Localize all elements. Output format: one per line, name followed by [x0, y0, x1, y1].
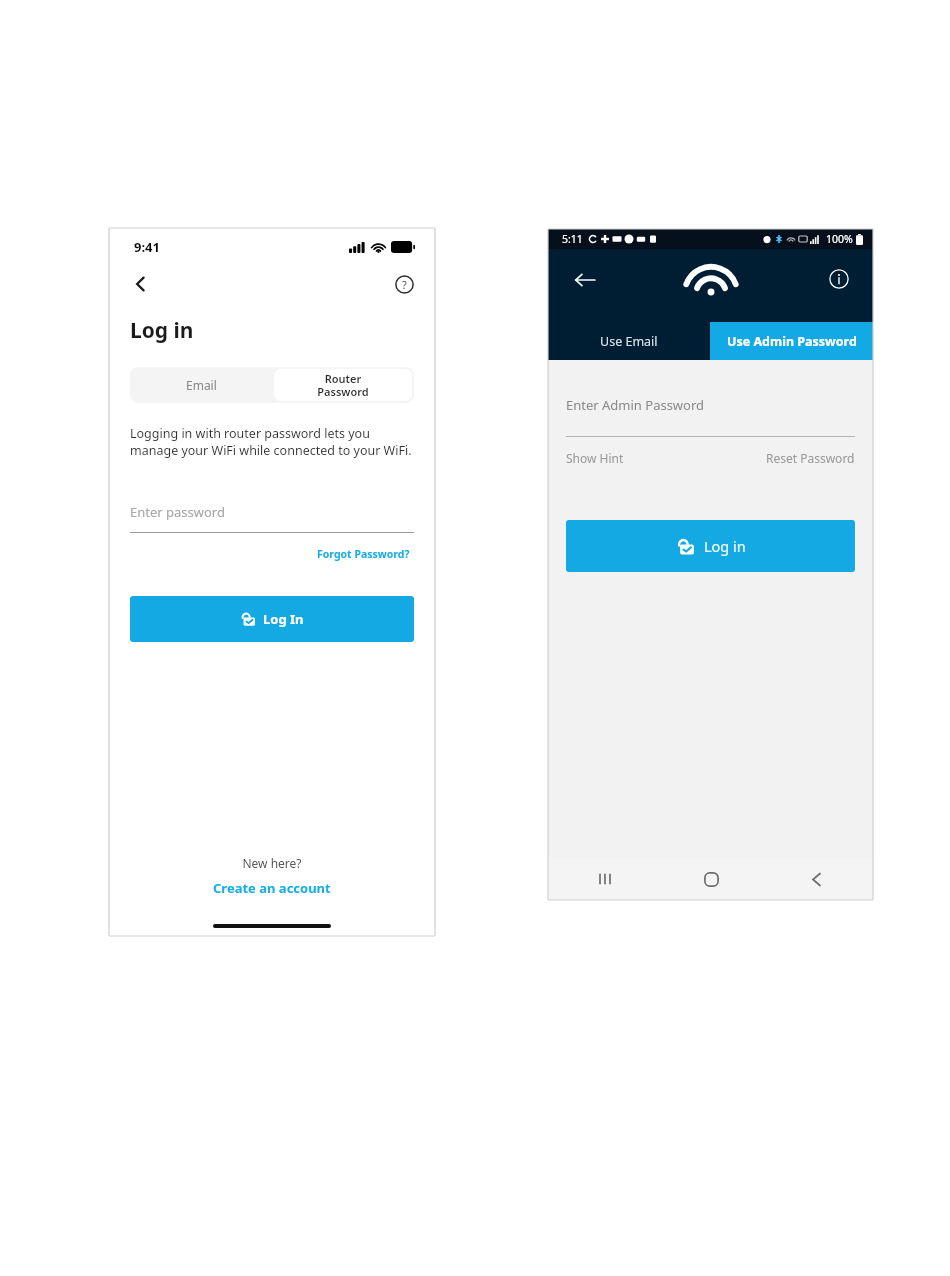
- staticText: Router Password: [317, 371, 369, 399]
- button[interactable]: Help: [387, 267, 421, 301]
- staticText: ?: [402, 277, 407, 292]
- staticText: New here?: [109, 855, 435, 871]
- button[interactable]: Info: [819, 259, 859, 299]
- staticText: Enter Admin Password: [566, 396, 705, 414]
- button[interactable]: Log In: [130, 596, 414, 642]
- button[interactable]: Back: [123, 266, 159, 302]
- staticText: Create an account: [213, 879, 331, 897]
- button[interactable]: Enter Admin Password: [566, 396, 855, 437]
- staticText: Logging in with router password lets you…: [130, 425, 414, 459]
- button[interactable]: Enter password: [130, 503, 414, 533]
- button[interactable]: Router Password: [274, 369, 412, 401]
- staticText: Log in: [130, 316, 194, 345]
- staticText: 9:41: [134, 238, 160, 256]
- button[interactable]: Use Email: [548, 322, 710, 360]
- staticText: 5:11: [562, 232, 583, 246]
- staticText: Use Email: [600, 333, 658, 350]
- staticText: Show Hint: [566, 450, 624, 466]
- button[interactable]: Show Hint: [566, 450, 624, 466]
- button[interactable]: Recents: [586, 860, 624, 898]
- staticText: Email: [186, 377, 217, 393]
- staticText: 100%: [826, 232, 853, 246]
- button[interactable]: Back: [564, 259, 606, 301]
- staticText: Reset Password: [766, 450, 855, 466]
- button[interactable]: Back: [797, 860, 835, 898]
- button[interactable]: Use Admin Password: [710, 322, 873, 360]
- button[interactable]: Email: [130, 367, 272, 403]
- staticText: Forgot Password?: [317, 547, 410, 561]
- button[interactable]: Log in: [566, 520, 855, 572]
- staticText: Log In: [263, 610, 304, 628]
- staticText: Enter password: [130, 503, 225, 521]
- button[interactable]: Reset Password: [766, 450, 855, 466]
- button[interactable]: Create an account: [210, 876, 334, 900]
- staticText: Use Admin Password: [727, 333, 857, 350]
- button[interactable]: Forgot Password?: [313, 543, 414, 565]
- button[interactable]: Home: [692, 860, 730, 898]
- staticText: Log in: [704, 536, 746, 556]
